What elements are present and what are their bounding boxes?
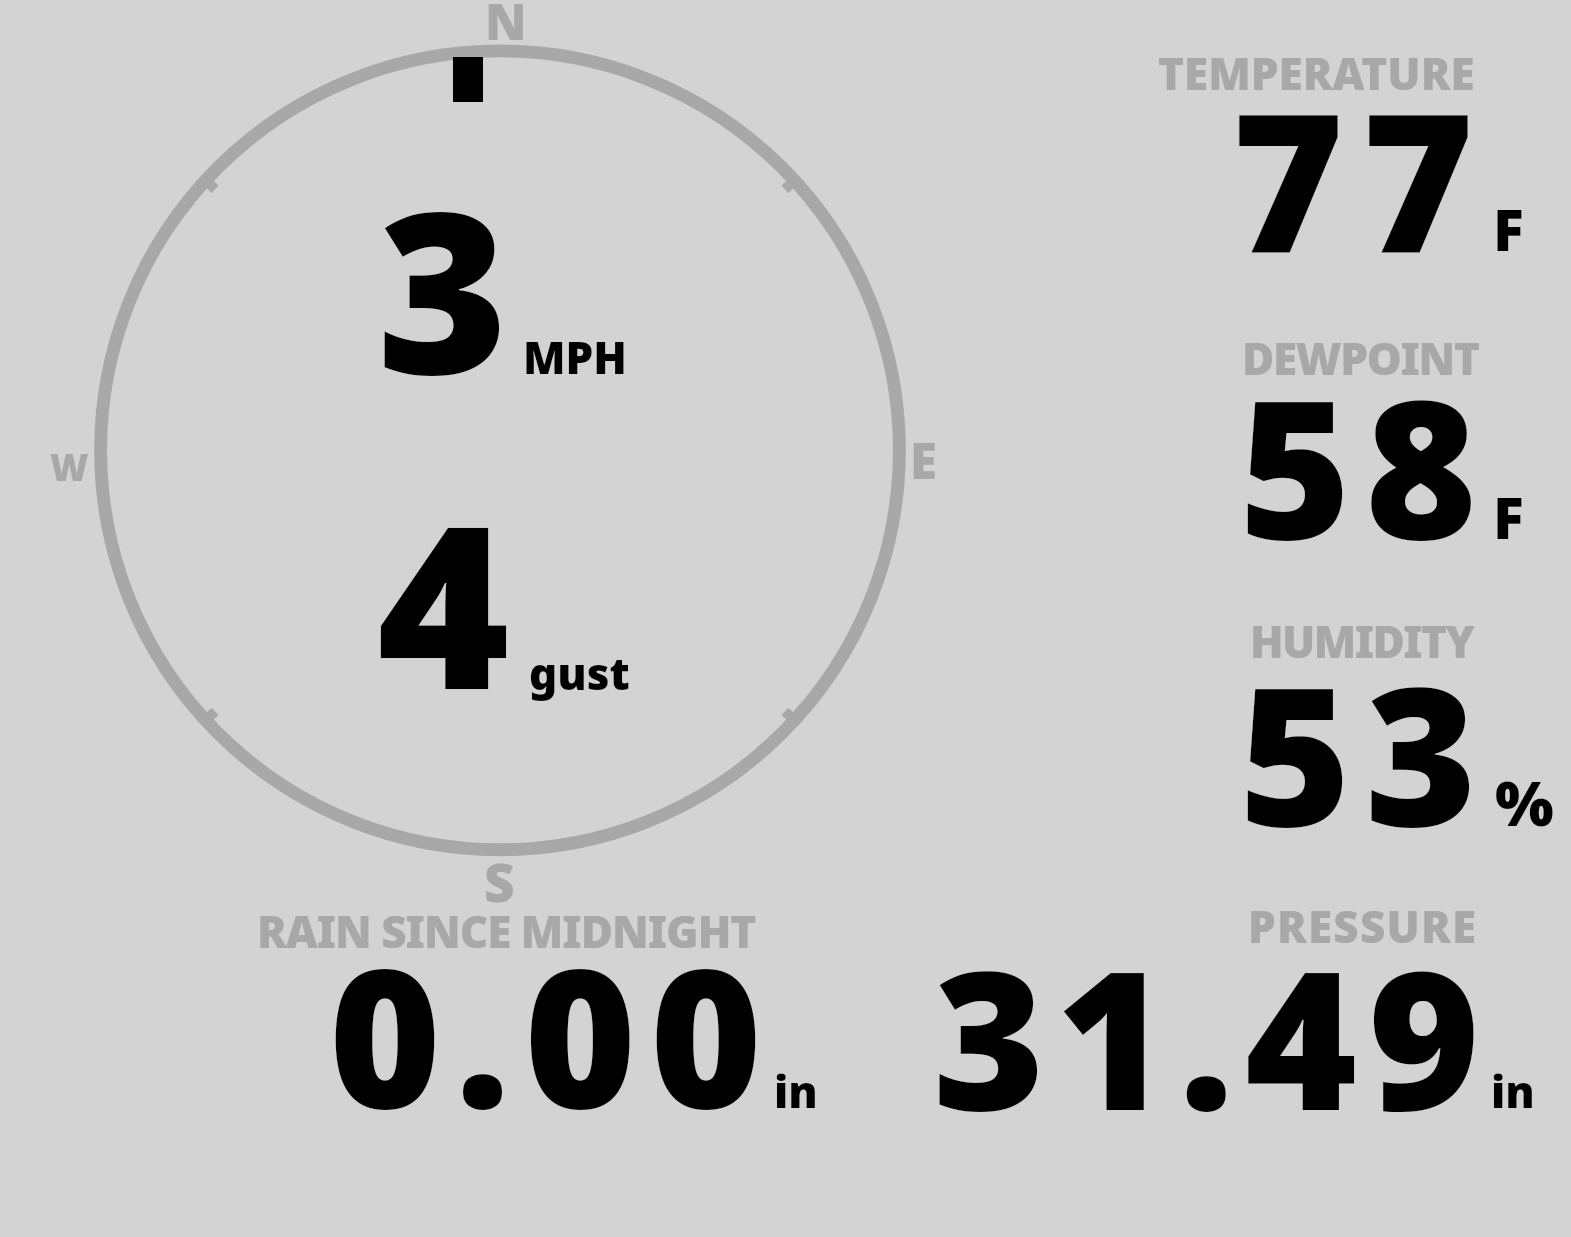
button[interactable]: Rain since midnight 0.00 inches	[150, 900, 850, 1130]
staticText: F	[1493, 190, 1524, 268]
button[interactable]: Humidity 53 percent	[1000, 590, 1571, 870]
staticText: 77	[1232, 48, 1492, 308]
staticText: W	[50, 441, 89, 491]
staticText: F	[1493, 478, 1524, 556]
button[interactable]: Temperature 77 degrees Fahrenheit	[1000, 20, 1571, 290]
staticText: 58	[1239, 335, 1491, 595]
button[interactable]: Dewpoint 58 degrees Fahrenheit	[1000, 300, 1571, 580]
staticText: %	[1495, 760, 1554, 844]
staticText: MPH	[523, 327, 628, 387]
staticText: 0.00	[329, 904, 776, 1164]
staticText: 3	[377, 135, 509, 440]
staticText: 4	[377, 447, 510, 755]
staticText: DEWPOINT	[1242, 328, 1479, 388]
staticText: gust	[529, 643, 630, 703]
staticText: PRESSURE	[1248, 896, 1478, 956]
staticText: in	[774, 1061, 818, 1121]
staticText: in	[1491, 1061, 1535, 1121]
button[interactable]: Pressure 31.49 inches	[880, 900, 1571, 1130]
staticText: 53	[1239, 622, 1491, 882]
staticText: TEMPERATURE	[1158, 43, 1475, 103]
button[interactable]: Wind 3 miles per hour, gusting 4, out of…	[40, 0, 960, 910]
staticText: 31.49	[933, 906, 1491, 1166]
staticText: E	[910, 427, 937, 494]
staticText: RAIN SINCE MIDNIGHT	[257, 901, 756, 961]
staticText: S	[484, 845, 515, 917]
staticText: HUMIDITY	[1250, 611, 1473, 671]
staticText: N	[485, 0, 527, 55]
